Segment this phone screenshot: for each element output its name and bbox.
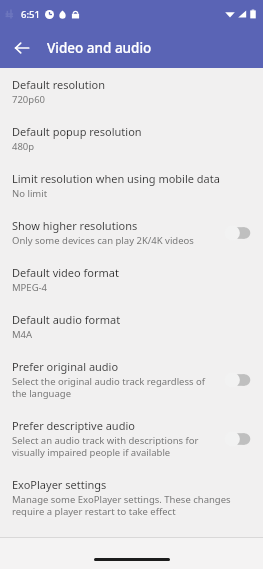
staticText: No limit bbox=[12, 187, 48, 200]
staticText: Select the original audio track regardle… bbox=[12, 375, 213, 400]
staticText: M4A bbox=[12, 328, 33, 341]
button[interactable]: Show higher resolutions bbox=[0, 209, 263, 256]
button[interactable]: Toggle setting bbox=[223, 429, 253, 449]
staticText: 6:51 bbox=[21, 8, 40, 21]
button[interactable]: Default video format bbox=[0, 256, 263, 303]
staticText: Video and audio bbox=[47, 39, 152, 57]
button[interactable]: Prefer original audio bbox=[0, 350, 263, 409]
staticText: 720p60 bbox=[12, 93, 46, 106]
staticText: ExoPlayer settings bbox=[12, 477, 107, 492]
staticText: Prefer original audio bbox=[12, 359, 119, 374]
staticText: Default resolution bbox=[12, 77, 106, 92]
staticText: Manage some ExoPlayer settings. These ch… bbox=[12, 493, 247, 518]
staticText: Default video format bbox=[12, 265, 119, 280]
button[interactable]: Toggle setting bbox=[223, 223, 253, 243]
button[interactable]: Limit resolution when using mobile data bbox=[0, 162, 263, 209]
staticText: MPEG-4 bbox=[12, 281, 48, 294]
button[interactable]: Toggle setting bbox=[223, 370, 253, 390]
button[interactable]: Back bbox=[6, 32, 38, 64]
button[interactable]: Default audio format bbox=[0, 303, 263, 350]
button[interactable]: Default popup resolution bbox=[0, 115, 263, 162]
staticText: 480p bbox=[12, 140, 35, 153]
staticText: Prefer descriptive audio bbox=[12, 418, 135, 433]
button[interactable]: Prefer descriptive audio bbox=[0, 409, 263, 468]
staticText: Limit resolution when using mobile data bbox=[12, 171, 220, 186]
button[interactable]: Default resolution bbox=[0, 68, 263, 115]
staticText: Show higher resolutions bbox=[12, 218, 138, 233]
staticText: Select an audio track with descriptions … bbox=[12, 434, 213, 459]
staticText: Only some devices can play 2K/4K videos bbox=[12, 234, 194, 247]
staticText: Default popup resolution bbox=[12, 124, 142, 139]
staticText: Default audio format bbox=[12, 312, 121, 327]
button[interactable]: ExoPlayer settings bbox=[0, 468, 263, 527]
